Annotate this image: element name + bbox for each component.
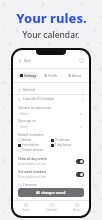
staticText: All changes saved xyxy=(36,190,66,195)
staticText: Timezone xyxy=(23,183,37,187)
button[interactable]: Select xyxy=(18,111,84,117)
button[interactable]: Settings xyxy=(18,72,38,79)
staticText: Back xyxy=(24,59,32,63)
staticText: More xyxy=(73,208,80,212)
staticText: Some subtitle text here xyxy=(18,175,47,179)
staticText: 5 min before xyxy=(22,143,39,147)
button[interactable]: Select xyxy=(18,124,84,130)
staticText: Profile xyxy=(48,74,58,78)
staticText: v xyxy=(82,183,84,187)
button[interactable]: Profile xyxy=(41,72,61,79)
staticText: Settings xyxy=(24,74,37,78)
staticText: General xyxy=(23,88,35,92)
button[interactable]: 1 day before xyxy=(51,143,72,147)
staticText: Select xyxy=(20,112,29,116)
staticText: Some subtitle text here xyxy=(18,162,47,166)
staticText: Calendar & Schedule xyxy=(23,97,55,101)
staticText: Calendar xyxy=(46,208,57,212)
staticText: Calendar for new events xyxy=(18,106,51,110)
button[interactable]: 10 minutes xyxy=(51,138,70,142)
button[interactable]: Calendar xyxy=(39,201,64,214)
staticText: v xyxy=(80,112,82,116)
staticText: Your calendar. xyxy=(22,29,80,41)
staticText: Your rules. xyxy=(16,9,87,27)
button[interactable]: General xyxy=(18,86,84,94)
button[interactable]: All changes saved xyxy=(18,188,84,197)
button[interactable]: Show all-day events xyxy=(18,157,84,166)
button[interactable]: About xyxy=(64,72,84,79)
button[interactable]: Home xyxy=(13,201,39,214)
staticText: Use week numbers xyxy=(18,170,47,174)
button[interactable]: 5 min before xyxy=(18,143,39,147)
staticText: Custom amount xyxy=(22,148,44,152)
button[interactable]: Back xyxy=(18,59,32,63)
staticText: Default reminders xyxy=(18,133,44,137)
staticText: Select xyxy=(20,125,29,129)
button[interactable]: Use week numbers xyxy=(18,170,84,179)
staticText: Home xyxy=(22,208,30,212)
button[interactable]: Help xyxy=(79,58,84,63)
button[interactable]: Calendar & Schedule xyxy=(18,95,84,103)
button[interactable]: At time xyxy=(18,138,32,142)
staticText: At time xyxy=(22,138,32,142)
staticText: v xyxy=(80,125,82,129)
button[interactable]: More xyxy=(64,201,89,214)
staticText: About xyxy=(72,74,81,78)
staticText: Show all-day events xyxy=(18,157,48,161)
staticText: 10 minutes xyxy=(55,138,70,142)
staticText: 1 day before xyxy=(55,143,72,147)
button[interactable]: Custom amount xyxy=(18,148,44,152)
staticText: Open app on xyxy=(18,119,36,123)
